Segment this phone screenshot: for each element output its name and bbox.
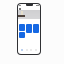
button[interactable] — [33, 24, 39, 33]
button[interactable] — [19, 24, 25, 31]
button[interactable] — [19, 32, 25, 38]
button[interactable] — [26, 24, 32, 33]
